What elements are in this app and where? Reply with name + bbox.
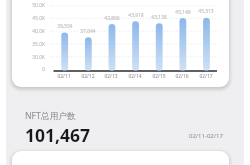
staticText: 02/16 [171, 73, 193, 80]
staticText: 02/12 [77, 73, 99, 80]
staticText: 02/13 [100, 73, 122, 80]
staticText: 02/11-02/17 [189, 132, 223, 140]
button[interactable]: NFT总用户数 [25, 110, 91, 147]
staticText: 0 [20, 66, 45, 73]
staticText: 02/11 [53, 73, 75, 80]
staticText: 42,866 [101, 15, 123, 22]
staticText: 43,138 [148, 14, 170, 21]
staticText: NFT总用户数 [25, 110, 76, 122]
staticText: 37,644 [77, 28, 99, 35]
staticText: 50.0K [20, 2, 45, 9]
staticText: 40.0K [20, 28, 45, 35]
staticText: 43,918 [125, 12, 147, 19]
staticText: 39,534 [54, 23, 76, 30]
staticText: 02/15 [148, 73, 170, 80]
staticText: 45,149 [172, 9, 194, 16]
staticText: 02/14 [124, 73, 146, 80]
staticText: 101,467 [25, 123, 91, 147]
staticText: 35.0K [20, 41, 45, 48]
button[interactable] [12, 0, 229, 87]
staticText: 30.0K [20, 54, 45, 61]
staticText: 45.0K [20, 15, 45, 22]
staticText: 45,313 [195, 8, 217, 15]
staticText: 02/17 [195, 73, 217, 80]
